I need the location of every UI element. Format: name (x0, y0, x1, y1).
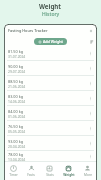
staticText: 29-07-2024 (8, 69, 26, 73)
button[interactable]: 93.00 kg (4, 136, 97, 150)
staticText: 78.00 kg (8, 152, 24, 157)
staticText: Fasts (27, 173, 35, 177)
button[interactable]: Add Weight (34, 38, 67, 45)
button[interactable]: 78.00 kg (4, 151, 97, 161)
staticText: More (84, 173, 92, 177)
button[interactable]: Sort (89, 39, 95, 45)
staticText: 81.50 kg (8, 49, 24, 54)
button[interactable]: More (78, 162, 97, 180)
button[interactable]: More options (86, 139, 94, 147)
staticText: Weight (39, 2, 62, 10)
button[interactable]: 90.00 kg (4, 61, 97, 75)
button[interactable]: 81.50 kg (4, 46, 97, 60)
staticText: 13-04-2024 (8, 157, 26, 161)
staticText: 20-04-2024 (8, 144, 26, 148)
staticText: 93.00 kg (8, 139, 24, 144)
staticText: 14-06-2024 (8, 99, 26, 103)
staticText: 90.00 kg (8, 64, 24, 69)
button[interactable]: Options (88, 28, 94, 34)
button[interactable]: More options (86, 49, 94, 57)
button[interactable]: More options (86, 109, 94, 117)
staticText: 83.00 kg (8, 94, 24, 99)
staticText: Fasting Hours Tracker (8, 28, 48, 33)
staticText: 84.00 kg (8, 109, 24, 114)
staticText: 01-06-2024 (8, 114, 26, 118)
button[interactable]: More options (86, 152, 94, 160)
staticText: Add Weight (43, 39, 63, 44)
staticText: 76.50 kg (8, 124, 24, 129)
button[interactable]: Stats (40, 162, 59, 180)
button[interactable]: 83.00 kg (4, 91, 97, 105)
button[interactable]: Timer (4, 162, 22, 180)
staticText: Weight (63, 173, 75, 177)
button[interactable]: More options (86, 94, 94, 102)
staticText: 31-07-2024 (8, 54, 26, 58)
staticText: History (42, 11, 60, 18)
button[interactable]: More options (86, 124, 94, 132)
button[interactable]: Weight (59, 162, 78, 180)
button[interactable]: Fasts (22, 162, 40, 180)
staticText: 21-06-2024 (8, 84, 26, 88)
button[interactable]: More options (86, 64, 94, 72)
staticText: 88.50 kg (8, 79, 24, 84)
button[interactable]: More options (86, 79, 94, 87)
button[interactable]: 76.50 kg (4, 121, 97, 135)
button[interactable]: 84.00 kg (4, 106, 97, 120)
staticText: Stats (46, 173, 54, 177)
button[interactable]: 88.50 kg (4, 76, 97, 90)
staticText: Timer (9, 173, 18, 177)
staticText: 05-05-2024 (8, 129, 26, 133)
